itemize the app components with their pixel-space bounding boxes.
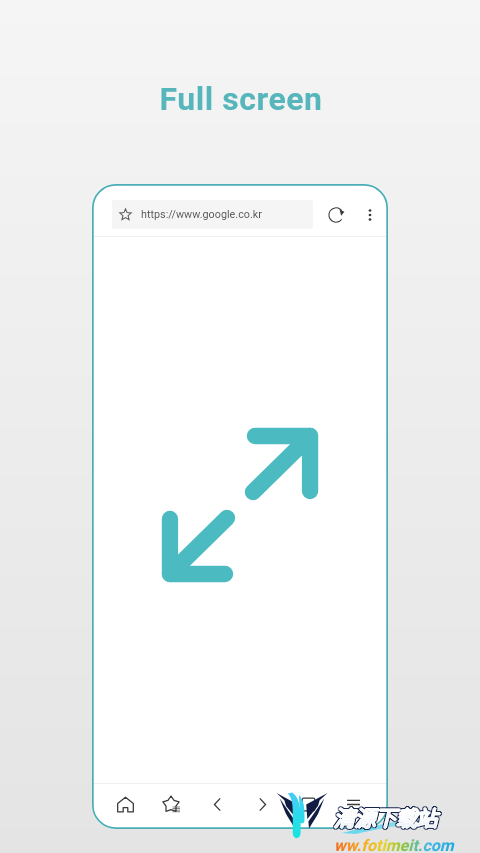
staticText: 清源下载站 [333,801,436,832]
button[interactable]: Back [209,796,226,813]
staticText: 清源下载站 [333,799,436,830]
staticText: 清源下载站 [334,801,437,832]
button[interactable]: Menu [345,796,362,813]
staticText: 清源下载站 [334,801,437,832]
staticText: 清源下载站 [334,801,437,832]
button[interactable]: Home [117,796,134,813]
staticText: 清源下载站 [334,801,437,832]
button[interactable]: Tabs [300,796,317,813]
staticText: 清源下载站 [334,800,437,831]
staticText: 清源下载站 [334,802,437,833]
button[interactable]: https://www.google.co.kr [112,200,313,229]
staticText: 清源下载站 [332,801,435,832]
staticText: 清源下载站 [332,800,435,831]
staticText: 清源下载站 [335,799,438,830]
staticText: 清源下载站 [335,801,438,832]
button[interactable]: More options [359,204,381,226]
staticText: 清源下载站 [335,803,438,834]
staticText: 清源下载站 [333,802,436,833]
staticText: Full screen [159,80,323,118]
staticText: 清源下载站 [336,800,439,831]
staticText: 清源下载站 [336,801,439,832]
staticText: 清源下载站 [336,802,439,833]
button[interactable]: Refresh [325,204,347,226]
staticText: ww.fotimeit.com [334,836,454,853]
button[interactable]: Forward [254,796,271,813]
staticText: 清源下载站 [334,801,437,832]
button[interactable]: Bookmarks [163,796,180,813]
staticText: 清源下载站 [332,802,435,833]
staticText: 清源下载站 [334,803,437,834]
staticText: 清源下载站 [333,800,436,831]
staticText: 清源下载站 [335,800,438,831]
staticText: https://www.google.co.kr [141,208,262,221]
staticText: 清源下载站 [334,799,437,830]
staticText: 清源下载站 [333,803,436,834]
staticText: 清源下载站 [335,802,438,833]
